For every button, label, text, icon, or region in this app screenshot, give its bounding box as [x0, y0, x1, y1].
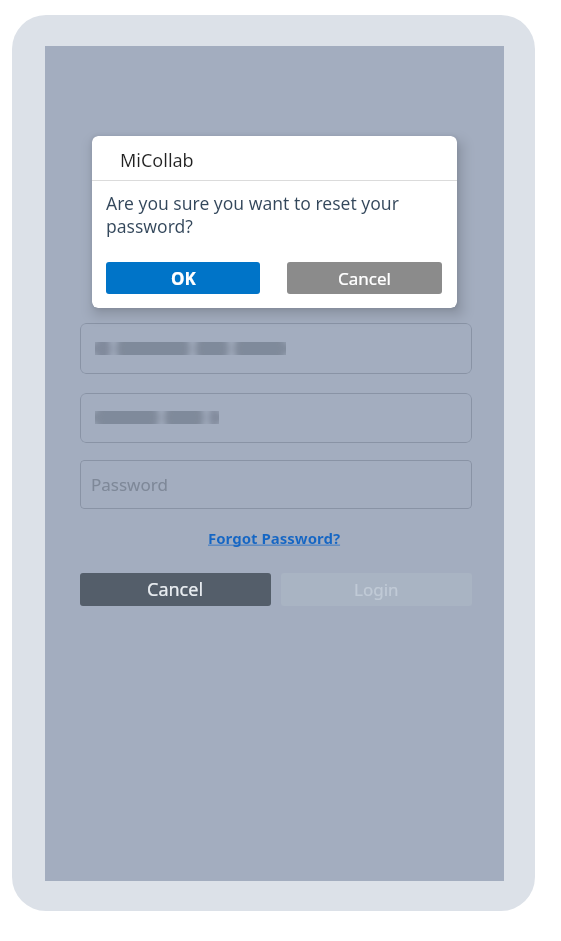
button[interactable]: Password [80, 460, 472, 509]
button[interactable]: Forgot Password? [208, 528, 341, 548]
button[interactable] [80, 393, 472, 443]
staticText: MiCollab [120, 148, 194, 173]
staticText: Login [354, 578, 399, 601]
staticText: Cancel [147, 577, 204, 602]
button[interactable]: Cancel [80, 573, 271, 606]
staticText: Are you sure you want to reset your pass… [106, 191, 399, 238]
button[interactable]: Cancel [287, 262, 442, 294]
button[interactable] [80, 323, 472, 374]
staticText: OK [171, 267, 196, 290]
button[interactable]: OK [106, 262, 260, 294]
staticText: Password [91, 473, 168, 496]
button[interactable]: Login [281, 573, 472, 606]
staticText: Cancel [338, 267, 391, 290]
